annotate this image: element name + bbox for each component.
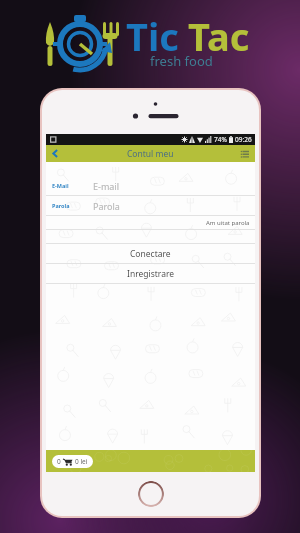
staticText: 0 [57, 457, 61, 466]
staticText: Parola [93, 200, 120, 212]
staticText: Tac [188, 10, 250, 62]
button[interactable]: Back [46, 145, 64, 162]
staticText: 0 lei [75, 457, 88, 466]
button[interactable]: E-Mail [46, 176, 255, 195]
button[interactable]: Conectare [46, 244, 255, 263]
button[interactable]: 0 [52, 455, 93, 468]
staticText: Am uitat parola [206, 219, 250, 227]
staticText: 09:26 [235, 135, 252, 144]
staticText: Contul meu [127, 148, 174, 160]
staticText: E-mail [93, 180, 120, 192]
staticText: fresh food [150, 52, 213, 70]
staticText: Conectare [130, 248, 171, 260]
button[interactable]: Menu [235, 145, 255, 162]
button[interactable]: Am uitat parola [206, 219, 255, 227]
staticText: Parola [52, 202, 70, 209]
staticText: Tic [126, 10, 179, 62]
staticText: 74% [214, 135, 227, 144]
button[interactable]: Parola [46, 196, 255, 215]
staticText: E-Mail [52, 182, 69, 189]
button[interactable]: Inregistrare [46, 264, 255, 283]
staticText: Inregistrare [127, 268, 175, 280]
